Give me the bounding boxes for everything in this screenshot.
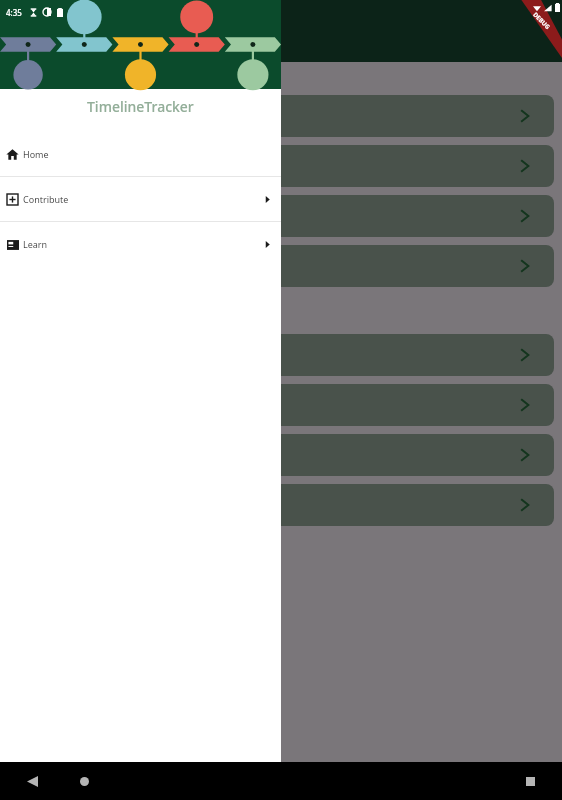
staticText: Contribute <box>23 193 69 205</box>
button[interactable] <box>8 334 554 376</box>
button[interactable] <box>8 384 554 426</box>
button[interactable]: Home <box>0 132 281 176</box>
button[interactable] <box>8 145 554 187</box>
staticText: 4:35 <box>6 7 22 18</box>
button[interactable]: Contribute <box>0 177 281 221</box>
staticText: Home <box>23 148 49 160</box>
staticText: Learn <box>23 238 48 250</box>
staticText: What's Happening <box>16 69 135 87</box>
button[interactable]: Learn <box>0 222 281 266</box>
button[interactable] <box>8 434 554 476</box>
button[interactable] <box>8 195 554 237</box>
button[interactable] <box>8 95 554 137</box>
staticText: TimelineTracker <box>87 97 194 116</box>
staticText: DEBUG <box>531 11 552 31</box>
button[interactable]: Back <box>20 769 44 793</box>
button[interactable]: Recent apps <box>518 769 542 793</box>
button[interactable] <box>8 245 554 287</box>
button[interactable] <box>8 484 554 526</box>
button[interactable]: Home <box>72 769 96 793</box>
